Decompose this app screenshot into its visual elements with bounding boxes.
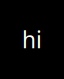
staticText: hi: [22, 24, 42, 54]
